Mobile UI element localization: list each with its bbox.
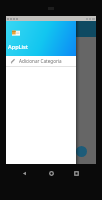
staticText: Adicionar Categoria: [19, 58, 62, 64]
staticText: AppList: [8, 43, 28, 51]
button[interactable]: Back: [20, 169, 29, 178]
button[interactable]: Add item: [76, 146, 87, 157]
button[interactable]: Recents: [72, 169, 81, 178]
button[interactable]: Adicionar Categoria: [6, 56, 76, 66]
button[interactable]: Home: [47, 169, 56, 178]
